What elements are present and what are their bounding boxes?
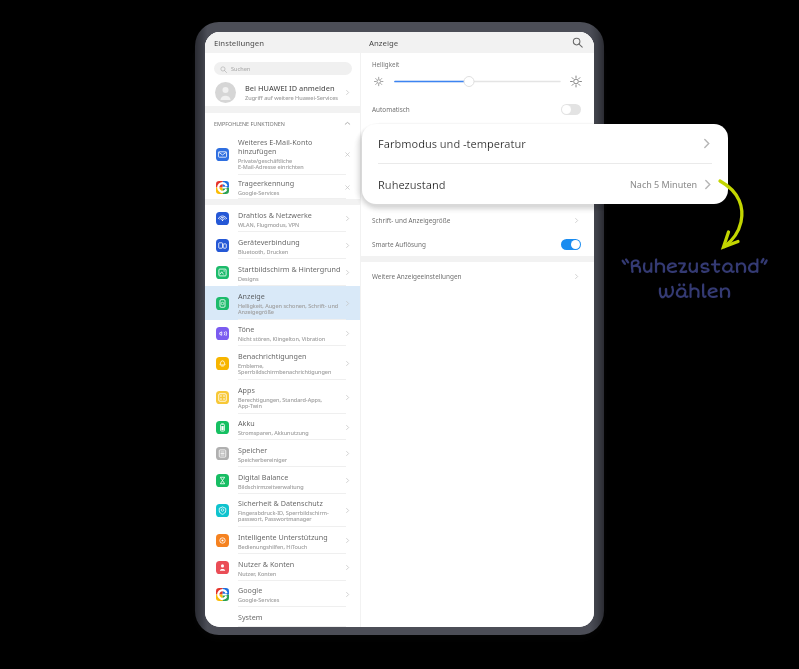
button[interactable]: Trageerkennung: [205, 175, 361, 199]
button[interactable]: Akku: [205, 414, 361, 440]
button[interactable]: Geräteverbindung: [205, 232, 361, 259]
staticText: Automatisch: [372, 105, 561, 114]
staticText: Helligkeit: [372, 60, 400, 68]
button[interactable]: Weiteres E-Mail-Konto hinzufügen: [205, 133, 361, 175]
button[interactable]: Automatisch: [361, 98, 594, 120]
button[interactable]: Nutzer & Konten: [205, 554, 361, 581]
staticText: Google: [238, 585, 263, 595]
button[interactable]: Töne: [205, 320, 361, 346]
button[interactable]: Google: [205, 581, 361, 607]
button[interactable]: Suchen: [214, 62, 352, 75]
staticText: Sicherheit & Datenschutz: [238, 498, 323, 508]
staticText: Bluetooth, Drucken: [238, 248, 289, 255]
button[interactable]: Schrift- und Anzeigegröße: [361, 208, 594, 232]
button[interactable]: Ruhezustand: [361, 156, 594, 208]
button[interactable]: [561, 104, 581, 115]
button[interactable]: Anzeige: [205, 286, 361, 320]
staticText: Speicher: [238, 445, 268, 455]
staticText: Anzeige: [369, 38, 399, 48]
staticText: Nach 5 Minuten: [630, 178, 698, 190]
staticText: Nutzer, Konten: [238, 570, 277, 577]
button[interactable]: Bei HUAWEI ID anmelden: [205, 75, 361, 106]
staticText: Trageerkennung: [238, 178, 295, 188]
staticText: Schrift- und Anzeigegröße: [372, 216, 572, 225]
staticText: Stromsparen, Akkunutzung: [238, 429, 309, 436]
staticText: Ruhezustand: [372, 178, 572, 187]
button[interactable]: System: [205, 607, 361, 627]
staticText: Suchen: [231, 65, 251, 73]
staticText: Speicherbereiniger: [238, 456, 288, 463]
staticText: Startbildschirm & Hintergrund: [238, 264, 341, 274]
button[interactable]: Apps: [205, 380, 361, 414]
button[interactable]: Sicherheit & Datenschutz: [205, 494, 361, 527]
button[interactable]: Intelligente Unterstützung: [205, 527, 361, 554]
staticText: Intelligente Unterstützung: [238, 532, 328, 542]
staticText: Nicht stören, Klingelton, Vibration: [238, 335, 326, 342]
button[interactable]: Startbildschirm & Hintergrund: [205, 259, 361, 286]
staticText: Ruhezustand: [378, 177, 630, 192]
staticText: Digital Balance: [238, 472, 289, 482]
staticText: Smarte Auflösung: [372, 240, 561, 249]
staticText: Einstellungen: [214, 38, 265, 48]
staticText: Akku: [238, 418, 255, 428]
staticText: Google-Services: [238, 189, 280, 196]
staticText: Farbmodus und -temperatur: [372, 136, 572, 145]
staticText: Zugriff auf weitere Huawei-Services: [245, 94, 338, 102]
staticText: Berechtigungen, Standard-Apps, App-Twin: [238, 396, 323, 410]
staticText: Google-Services: [238, 596, 280, 603]
staticText: Fingerabdruck-ID, Sperrbildschirm- passw…: [238, 509, 329, 523]
staticText: Designs: [238, 275, 259, 282]
staticText: Weiteres E-Mail-Konto hinzufügen: [238, 137, 313, 156]
button[interactable]: Farbmodus und -temperatur: [362, 124, 728, 163]
button[interactable]: Weitere Anzeigeeinstellungen: [361, 262, 594, 290]
staticText: Geräteverbindung: [238, 237, 300, 247]
staticText: System: [238, 612, 263, 622]
staticText: Farbmodus und -temperatur: [378, 136, 698, 151]
button[interactable]: Ruhezustand: [362, 164, 728, 204]
staticText: Helligkeit, Augen schonen, Schrift- und …: [238, 302, 339, 316]
staticText: WLAN, Flugmodus, VPN: [238, 221, 300, 228]
button[interactable]: Speicher: [205, 440, 361, 467]
staticText: Embleme, Sperrbildschirmbenachrichtigung…: [238, 362, 332, 376]
staticText: Bedienungshilfen, HiTouch: [238, 543, 308, 550]
staticText: Bildschirmzeitverwaltung: [238, 483, 304, 490]
staticText: Apps: [238, 385, 255, 395]
staticText: Bei HUAWEI ID anmelden: [245, 83, 335, 93]
staticText: Benachrichtigungen: [238, 351, 307, 361]
staticText: “Ruhezustand”: [620, 256, 768, 278]
staticText: EMPFOHLENE FUNKTIONEN: [214, 120, 343, 127]
button[interactable]: [561, 239, 581, 250]
staticText: Anzeige: [238, 291, 265, 301]
staticText: Weitere Anzeigeeinstellungen: [372, 272, 572, 281]
button[interactable]: Digital Balance: [205, 467, 361, 494]
staticText: Private/geschäftliche E-Mail-Adresse ein…: [238, 157, 304, 171]
staticText: Drahtlos & Netzwerke: [238, 210, 312, 220]
button[interactable]: Suchen: [571, 36, 584, 49]
staticText: Töne: [238, 324, 255, 334]
staticText: Nutzer & Konten: [238, 559, 295, 569]
staticText: wählen: [657, 281, 731, 303]
button[interactable]: Benachrichtigungen: [205, 346, 361, 380]
button[interactable]: Farbmodus und -temperatur: [361, 124, 594, 156]
button[interactable]: Smarte Auflösung: [361, 232, 594, 256]
button[interactable]: Drahtlos & Netzwerke: [205, 205, 361, 232]
